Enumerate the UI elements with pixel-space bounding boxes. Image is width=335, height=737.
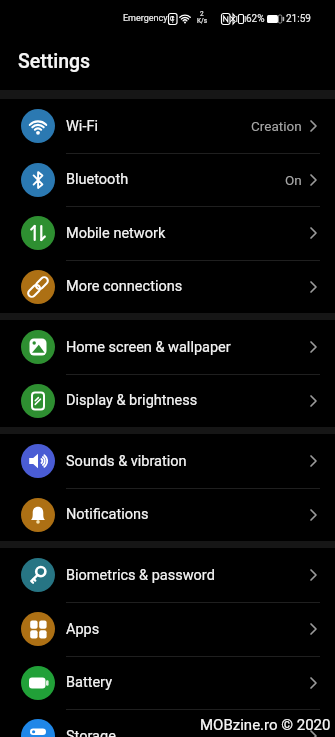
staticText: 21:59 [286,13,311,25]
button[interactable]: Battery [0,656,335,709]
staticText: Display & brightness [66,392,198,409]
button[interactable]: Home screen & wallpaper [0,320,335,374]
button[interactable]: Apps [0,602,335,656]
staticText: Home screen & wallpaper [66,339,231,356]
staticText: Notifications [66,506,149,523]
button[interactable]: Mobile network [0,206,335,260]
button[interactable]: Display & brightness [0,374,335,427]
staticText: Mobile network [66,225,166,242]
staticText: Battery [66,674,112,691]
staticText: Biometrics & password [66,567,215,584]
staticText: Storage [66,728,116,737]
staticText: MOBzine.ro © 2020 [200,716,331,734]
staticText: 2 [200,10,204,18]
staticText: Settings [18,50,91,73]
button[interactable]: Sounds & vibration [0,434,335,488]
staticText: 62% [246,13,265,25]
staticText: Bluetooth [66,171,129,188]
staticText: Apps [66,621,100,638]
staticText: Emergency c [123,13,175,24]
button[interactable]: More connections [0,260,335,313]
button[interactable]: Biometrics & password [0,548,335,602]
staticText: More connections [66,278,183,295]
staticText: Creation [251,118,302,134]
staticText: Sounds & vibration [66,453,187,470]
staticText: On [285,172,302,188]
button[interactable]: Storage [0,709,335,737]
button[interactable]: Bluetooth [0,153,335,206]
button[interactable]: Notifications [0,488,335,541]
staticText: K/s [197,17,208,25]
button[interactable]: Wi-Fi [0,99,335,153]
staticText: Wi-Fi [66,118,98,135]
